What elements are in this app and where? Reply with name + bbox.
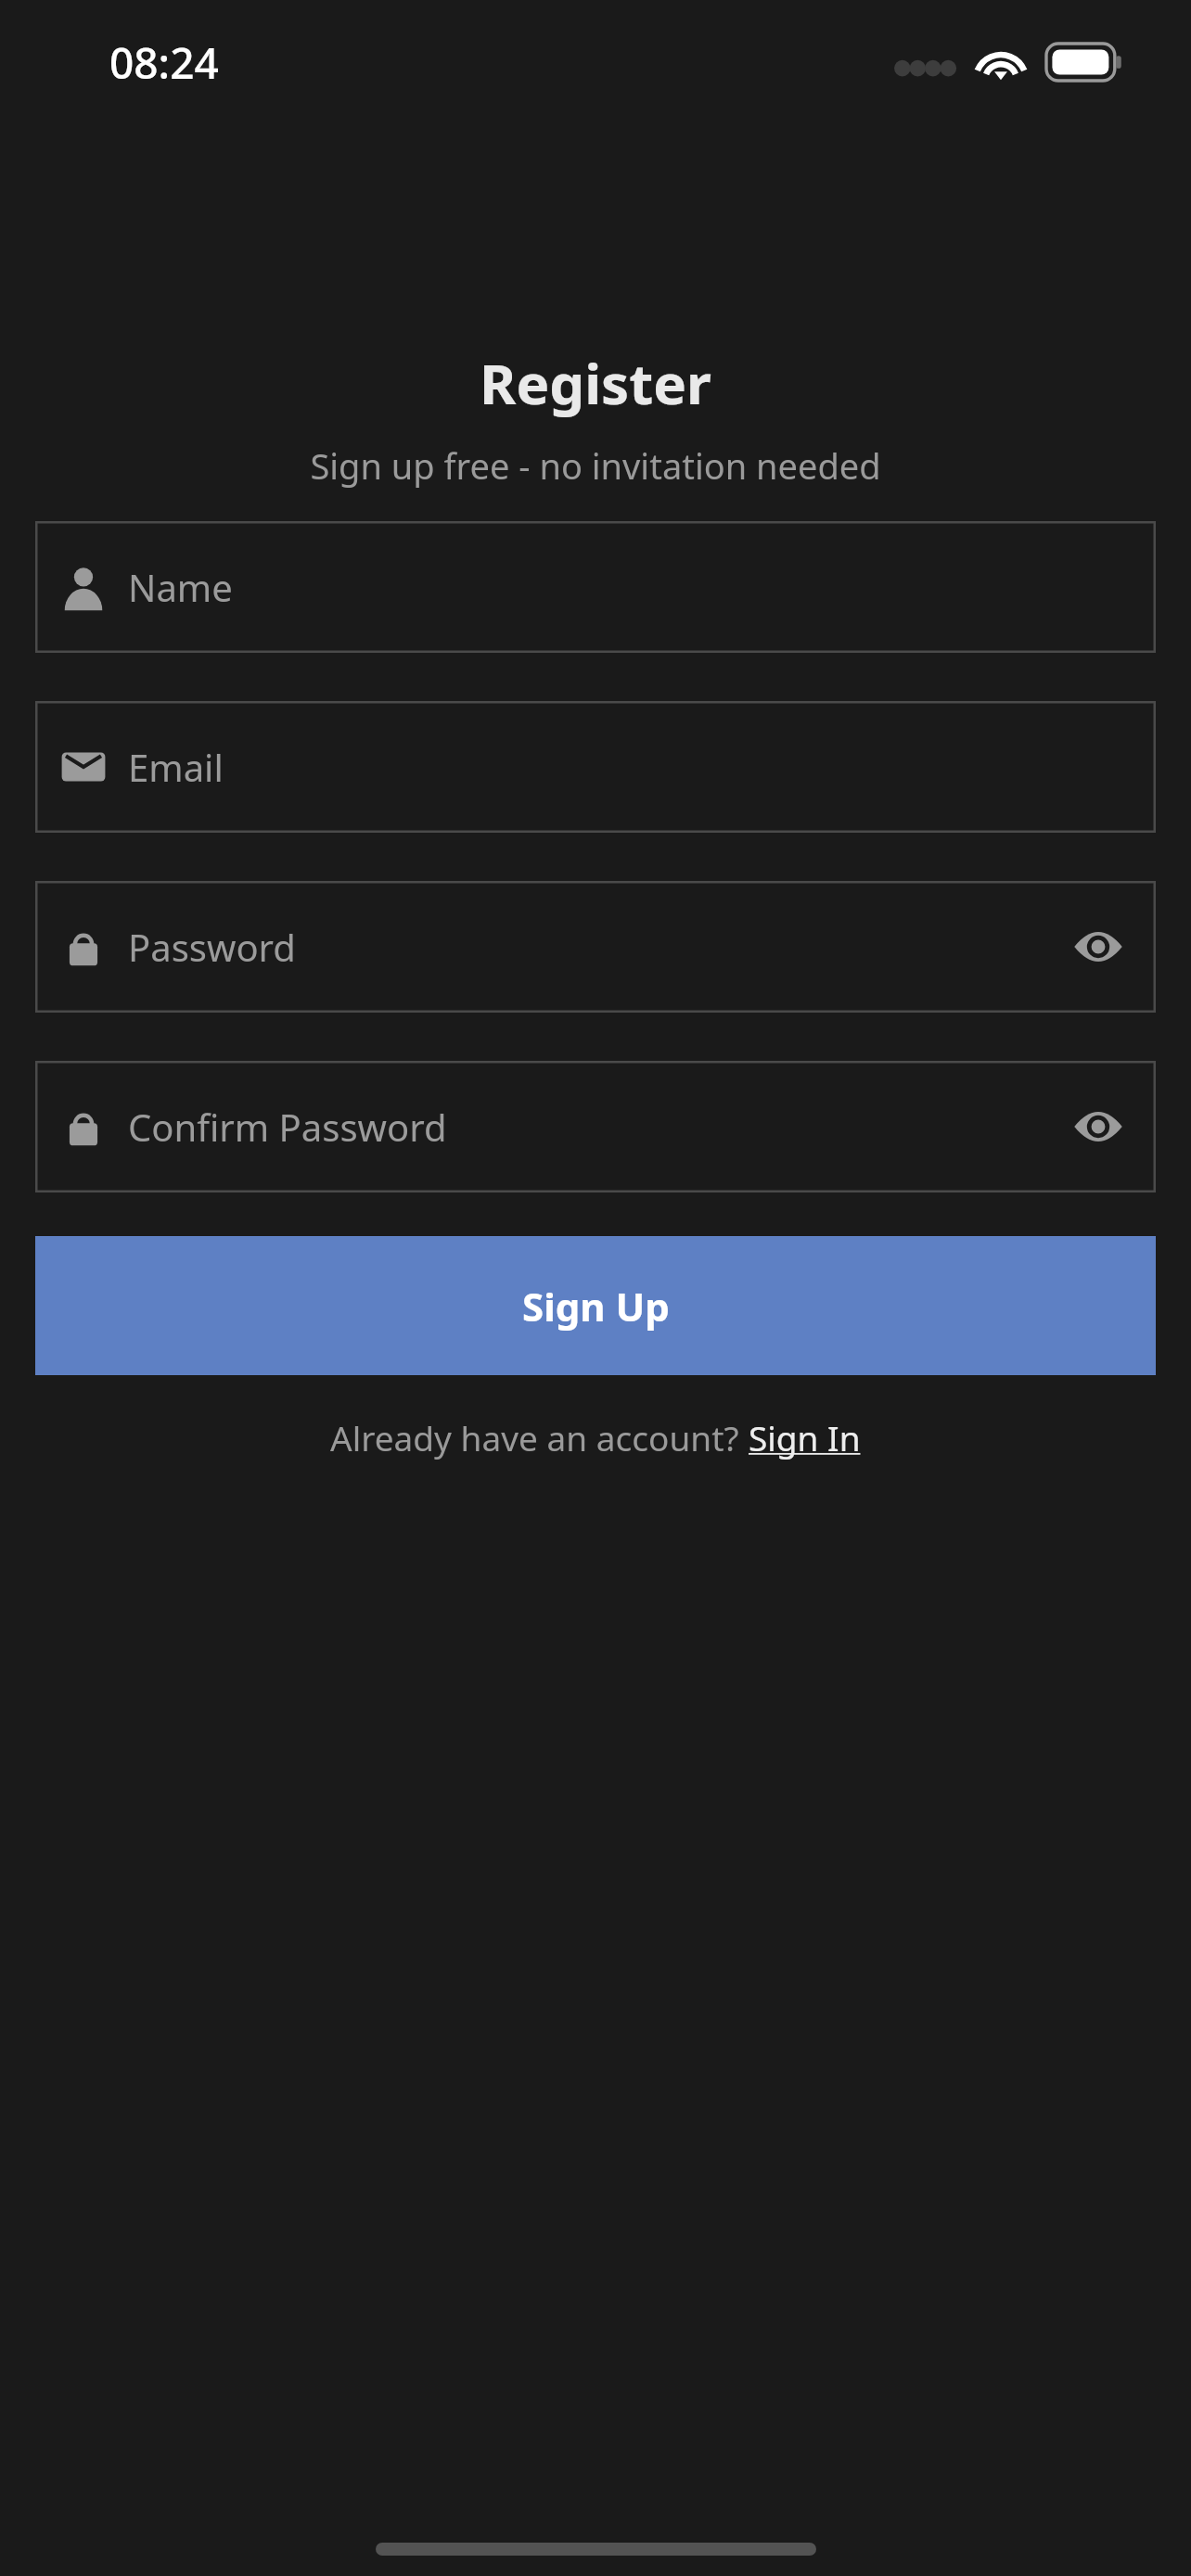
button[interactable]: Show password (1069, 917, 1128, 976)
staticText: Already have an account? (330, 1414, 749, 1460)
staticText: Password (128, 922, 1069, 972)
staticText: Confirm Password (128, 1102, 1069, 1152)
button[interactable]: Email (35, 701, 1156, 833)
button[interactable]: Name (35, 521, 1156, 653)
staticText: Email (128, 742, 1128, 792)
button[interactable]: Sign In (749, 1414, 861, 1460)
button[interactable]: Confirm Password (35, 1061, 1156, 1192)
staticText: 08:24 (109, 33, 219, 92)
staticText: Sign up free - no invitation needed (0, 441, 1191, 490)
staticText: Sign Up (522, 1280, 670, 1333)
button[interactable]: Show password (1069, 1097, 1128, 1156)
staticText: Register (0, 345, 1191, 421)
staticText: Name (128, 562, 1128, 612)
button[interactable]: Password (35, 881, 1156, 1013)
button[interactable]: Sign Up (35, 1236, 1156, 1375)
staticText: Sign In (749, 1414, 861, 1460)
